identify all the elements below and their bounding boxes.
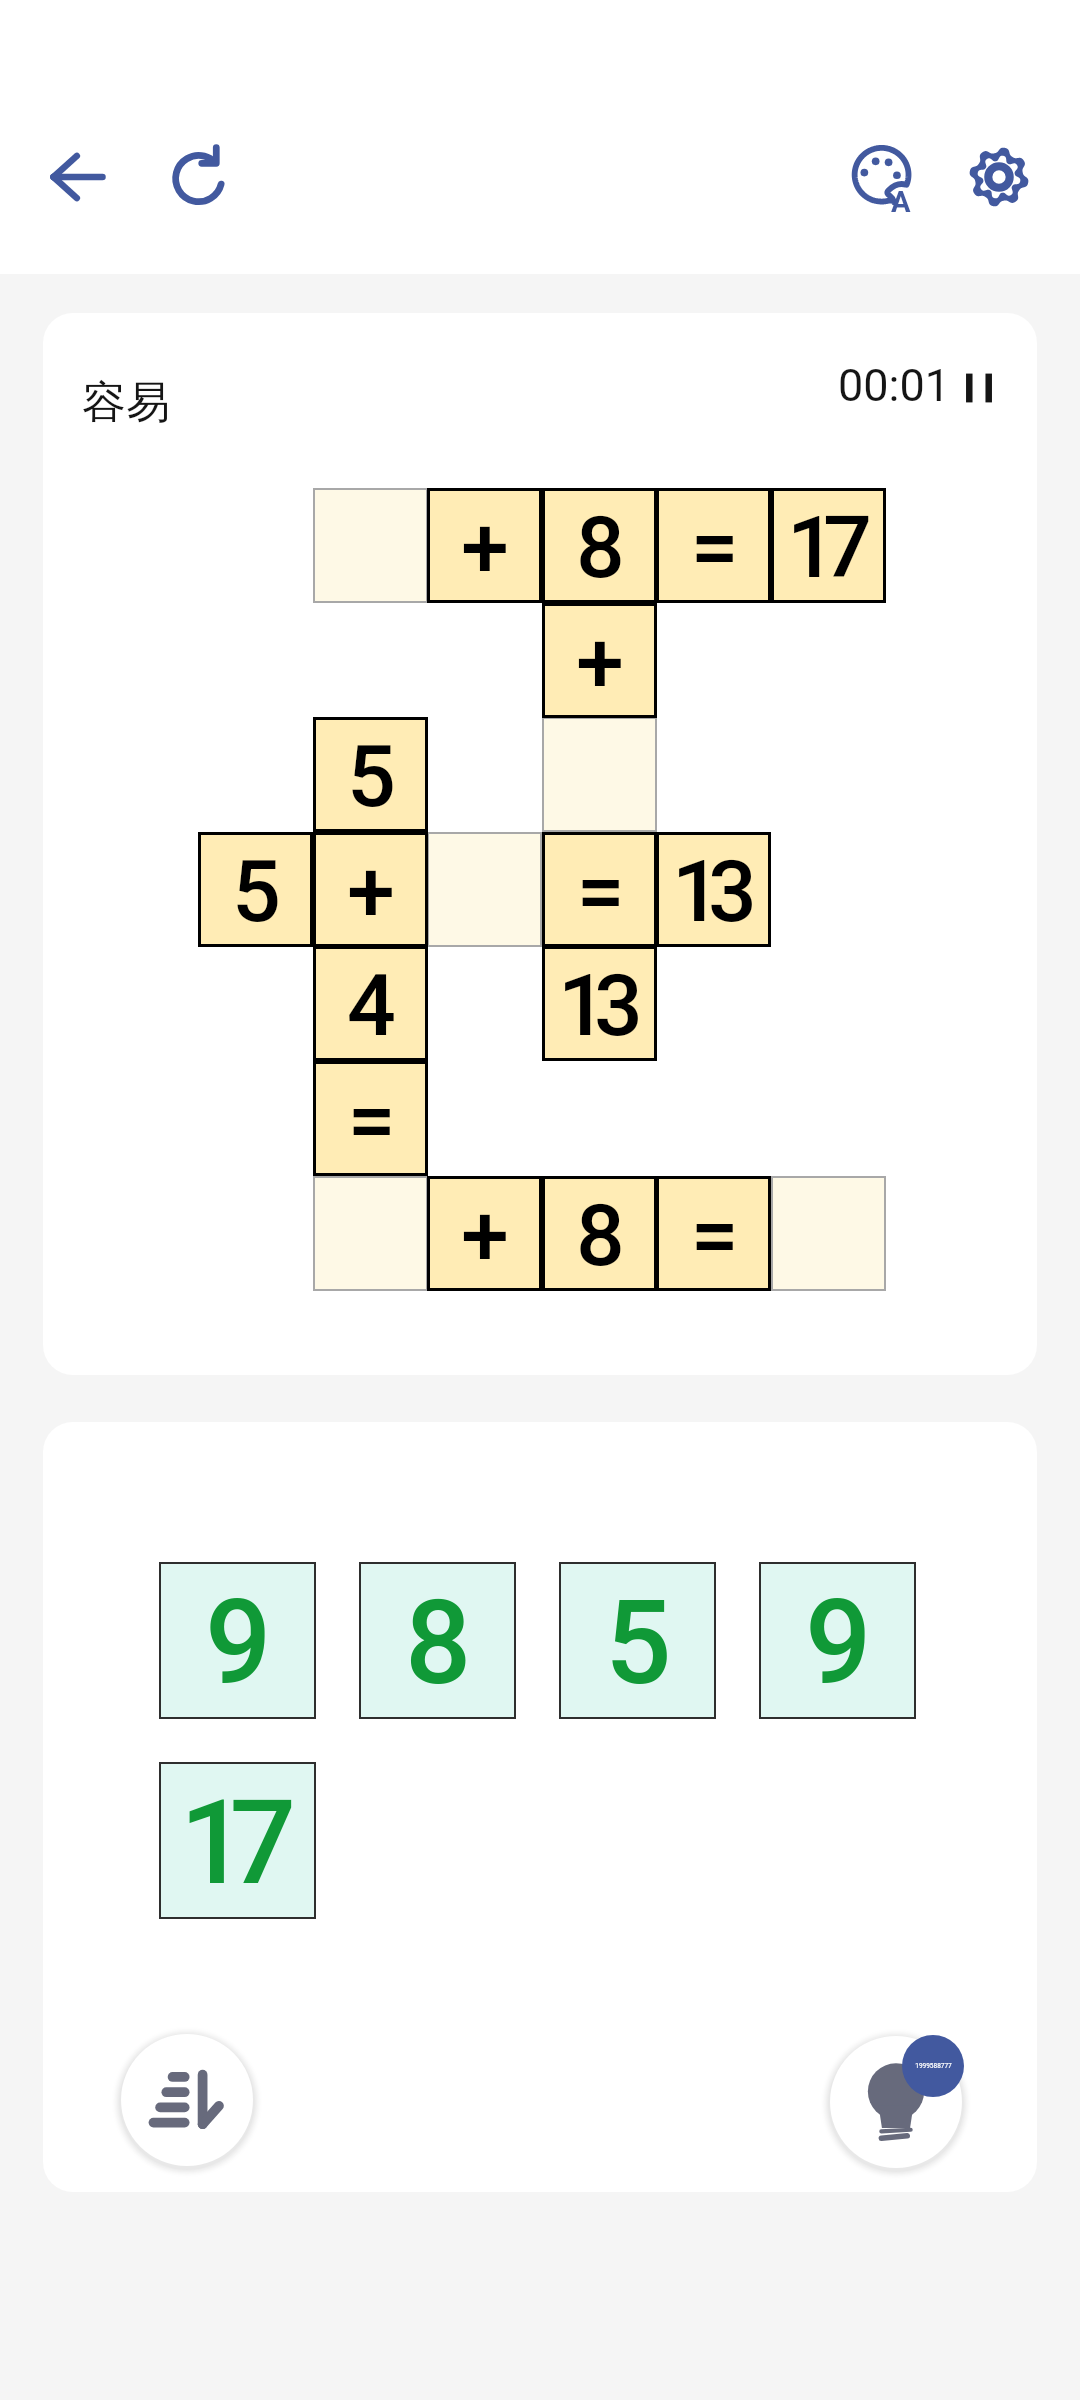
button[interactable]: Hint [830,2036,962,2168]
button[interactable]: 13 [542,946,657,1061]
staticText: + [576,612,611,713]
button[interactable]: Pause [961,370,997,406]
button[interactable]: Theme [830,125,934,229]
staticText: 5 [232,841,268,942]
button[interactable] [313,1176,428,1291]
staticText: + [461,1185,496,1286]
button[interactable]: Refresh [146,126,250,230]
button[interactable]: 5 [198,832,313,947]
button[interactable]: 8 [359,1562,516,1719]
button[interactable]: + [427,1176,542,1291]
staticText: 5 [605,1574,655,1711]
button[interactable]: 17 [159,1762,316,1919]
button[interactable]: Sort [121,2034,253,2166]
button[interactable]: = [656,1176,771,1291]
staticText: 5 [347,726,383,827]
button[interactable]: 5 [559,1562,716,1719]
button[interactable]: 8 [542,488,657,603]
staticText: 9 [205,1574,255,1711]
staticText: 17 [787,497,859,598]
staticText: 00:01 [838,359,951,412]
staticText: 4 [347,955,383,1056]
staticText: 8 [576,497,612,598]
button[interactable]: + [427,488,542,603]
staticText: + [461,497,496,598]
button[interactable] [427,832,542,947]
staticText: = [690,497,726,598]
button[interactable]: 5 [313,717,428,832]
button[interactable]: = [542,832,657,947]
button[interactable] [542,717,657,832]
staticText: + [347,841,382,942]
staticText: 13 [672,841,744,942]
button[interactable]: 4 [313,946,428,1061]
button[interactable] [771,1176,886,1291]
staticText: 9 [805,1574,855,1711]
staticText: 8 [576,1185,612,1286]
button[interactable]: 9 [759,1562,916,1719]
button[interactable]: 13 [656,832,771,947]
staticText: = [690,1185,726,1286]
button[interactable] [313,488,428,603]
button[interactable]: 17 [771,488,886,603]
button[interactable]: + [313,832,428,947]
staticText: 1999588777 [915,2062,952,2070]
staticText: 容易 [82,375,170,430]
staticText: A [891,185,911,219]
staticText: 17 [180,1774,279,1911]
button[interactable]: = [656,488,771,603]
staticText: = [347,1070,383,1171]
button[interactable]: + [542,603,657,718]
button[interactable]: = [313,1061,428,1176]
staticText: 13 [558,955,630,1056]
button[interactable]: 8 [542,1176,657,1291]
button[interactable]: Back [26,125,130,229]
staticText: 8 [405,1574,455,1711]
button[interactable]: 9 [159,1562,316,1719]
button[interactable]: Settings [947,125,1051,229]
staticText: = [576,841,612,942]
